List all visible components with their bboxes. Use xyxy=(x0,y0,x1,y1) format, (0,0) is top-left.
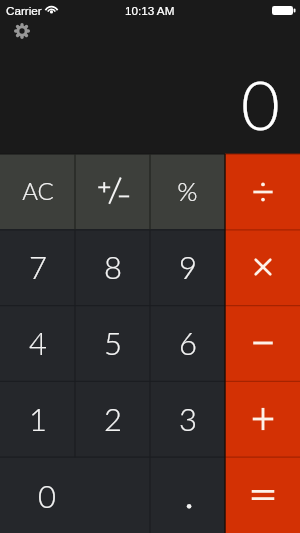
button[interactable]: 0 xyxy=(0,457,150,533)
staticText: % xyxy=(177,175,198,206)
staticText: 8 xyxy=(104,248,122,285)
button[interactable]: Multiply xyxy=(225,229,300,305)
button[interactable]: 3 xyxy=(150,381,225,457)
button[interactable]: Minus xyxy=(225,305,300,381)
staticText: 10:13 AM xyxy=(125,4,175,17)
button[interactable]: Equals xyxy=(225,457,300,533)
staticText: 4 xyxy=(29,324,47,361)
staticText: 1 xyxy=(29,400,47,437)
button[interactable]: 5 xyxy=(75,305,150,381)
button[interactable]: 2 xyxy=(75,381,150,457)
button[interactable]: Settings xyxy=(8,17,35,44)
button[interactable]: 7 xyxy=(0,229,75,305)
staticText: 2 xyxy=(104,400,122,437)
staticText: AC xyxy=(22,176,54,205)
staticText: 0 xyxy=(38,477,56,514)
staticText: 7 xyxy=(29,248,47,285)
button[interactable]: 4 xyxy=(0,305,75,381)
staticText: 0 xyxy=(241,64,280,144)
button[interactable]: % xyxy=(150,154,225,229)
button[interactable]: Toggle sign xyxy=(75,154,150,229)
button[interactable]: Plus xyxy=(225,381,300,457)
staticText: Carrier xyxy=(6,4,42,17)
button[interactable]: 6 xyxy=(150,305,225,381)
staticText: 3 xyxy=(179,400,197,437)
button[interactable]: 8 xyxy=(75,229,150,305)
button[interactable]: 1 xyxy=(0,381,75,457)
button[interactable]: Decimal point xyxy=(150,457,225,533)
button[interactable]: Divide xyxy=(225,154,300,229)
button[interactable]: 9 xyxy=(150,229,225,305)
staticText: 5 xyxy=(104,324,122,361)
staticText: 9 xyxy=(179,248,197,285)
button[interactable]: AC xyxy=(0,154,75,229)
staticText: 6 xyxy=(179,324,197,361)
